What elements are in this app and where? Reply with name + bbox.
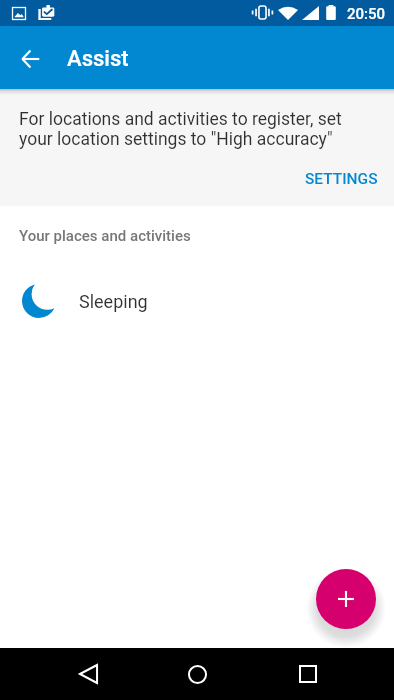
staticText: 20:50 (347, 5, 386, 23)
button[interactable]: Recent apps (284, 650, 332, 698)
staticText: your location settings to "High accuracy… (19, 129, 333, 150)
button[interactable]: Sleeping (0, 274, 394, 328)
button[interactable]: Home (173, 650, 221, 698)
button[interactable]: Navigate up (8, 33, 56, 81)
button[interactable]: SETTINGS (297, 163, 386, 195)
staticText: SETTINGS (305, 170, 378, 188)
button[interactable]: Add (316, 569, 376, 629)
button[interactable]: Back (63, 650, 111, 698)
staticText: Assist (67, 46, 129, 72)
staticText: Your places and activities (19, 227, 191, 245)
staticText: Sleeping (79, 291, 148, 312)
staticText: For locations and activities to register… (19, 109, 342, 130)
